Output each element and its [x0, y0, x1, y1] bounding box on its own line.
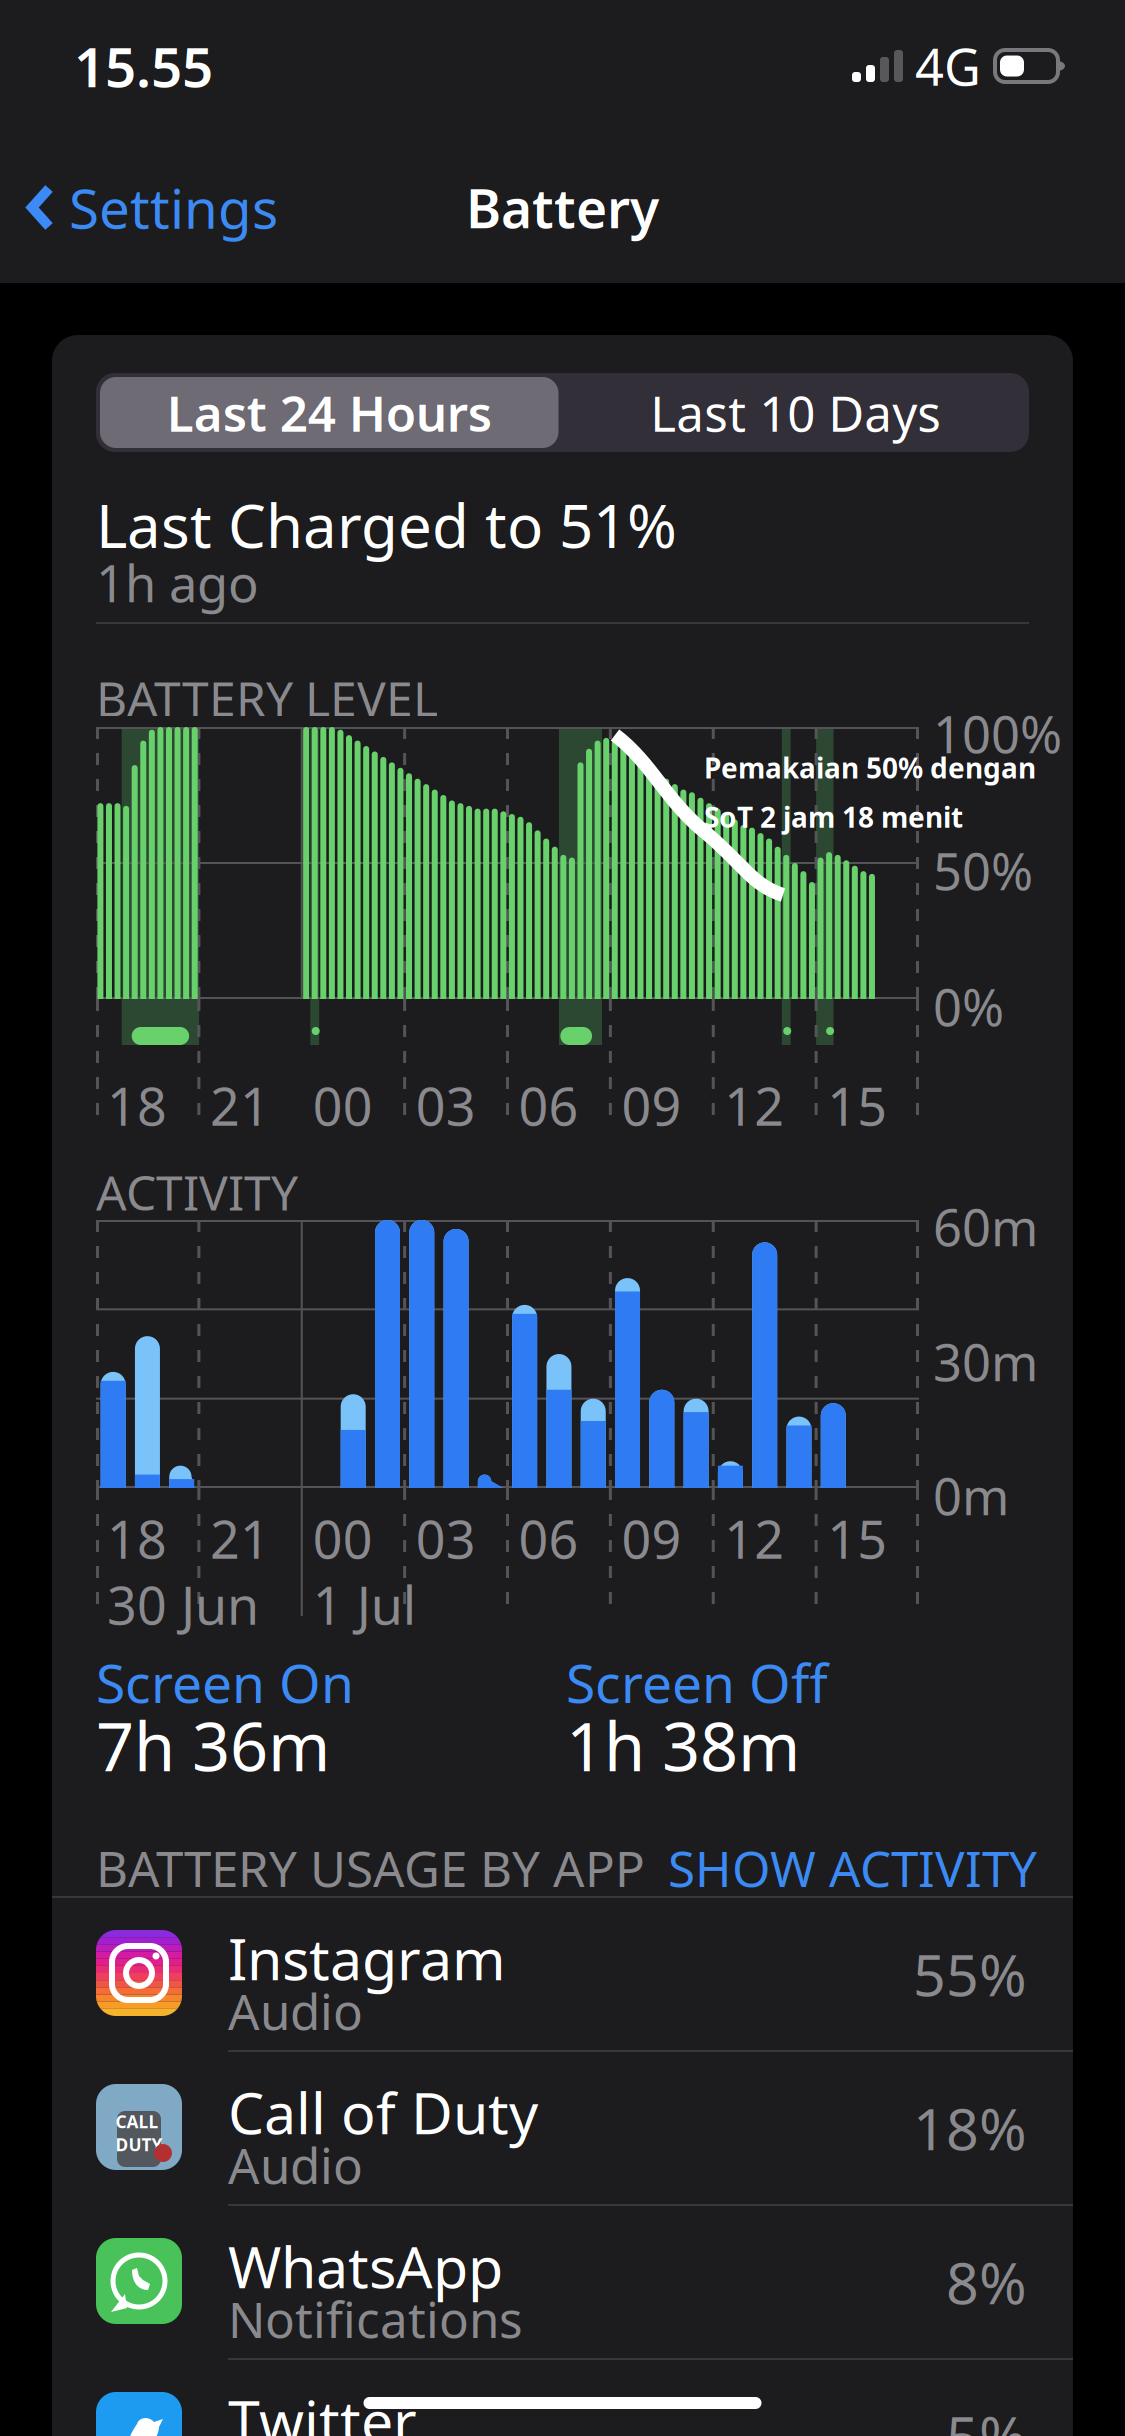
- staticText: Settings: [69, 171, 278, 244]
- staticText: BATTERY USAGE BY APP: [96, 1835, 645, 1900]
- staticText: WhatsApp: [228, 2228, 503, 2304]
- staticText: 5%: [946, 2398, 1027, 2436]
- staticText: 4G: [915, 32, 981, 100]
- staticText: 7h 36m: [96, 1701, 330, 1789]
- staticText: 1 Jul: [313, 1570, 416, 1639]
- button[interactable]: WhatsApp: [52, 2206, 1073, 2358]
- button[interactable]: CALL DUTY: [52, 2052, 1073, 2204]
- button[interactable]: SHOW ACTIVITY: [668, 1835, 1037, 1900]
- staticText: 55%: [913, 1936, 1027, 2012]
- staticText: 8%: [946, 2244, 1027, 2320]
- staticText: 03: [416, 1504, 476, 1573]
- staticText: 15.55: [74, 30, 213, 102]
- staticText: 21: [210, 1071, 270, 1140]
- staticText: 00: [313, 1071, 373, 1140]
- staticText: Call of Duty: [228, 2074, 538, 2150]
- staticText: 09: [621, 1504, 681, 1573]
- staticText: 30 Jun: [107, 1570, 259, 1639]
- button[interactable]: Settings: [0, 157, 278, 258]
- staticText: SHOW ACTIVITY: [668, 1835, 1037, 1900]
- staticText: BATTERY LEVEL: [96, 666, 438, 730]
- staticText: 1h ago: [96, 549, 259, 616]
- staticText: CALL DUTY: [115, 2110, 162, 2156]
- staticText: SoT 2 jam 18 menit: [704, 798, 963, 835]
- staticText: 06: [518, 1504, 578, 1573]
- button[interactable]: Twitter: [52, 2360, 1073, 2436]
- button[interactable]: Instagram: [52, 1898, 1073, 2050]
- staticText: 06: [518, 1071, 578, 1140]
- staticText: Screen Off: [566, 1647, 828, 1718]
- staticText: Audio: [228, 2132, 363, 2197]
- staticText: Twitter: [228, 2382, 417, 2436]
- staticText: 12: [724, 1504, 784, 1573]
- button[interactable]: Last 24 Hours: [96, 373, 562, 452]
- staticText: Instagram: [228, 1920, 506, 1996]
- staticText: 12: [724, 1071, 784, 1140]
- staticText: 30m: [933, 1328, 1038, 1395]
- staticText: 100%: [933, 700, 1062, 767]
- staticText: Last 24 Hours: [167, 380, 492, 445]
- staticText: 1h 38m: [566, 1701, 800, 1789]
- staticText: 50%: [933, 837, 1033, 904]
- staticText: 60m: [933, 1193, 1038, 1260]
- staticText: Last 10 Days: [650, 380, 941, 445]
- staticText: 00: [313, 1504, 373, 1573]
- staticText: 0m: [933, 1462, 1009, 1529]
- staticText: 0%: [933, 973, 1004, 1040]
- staticText: Last Charged to 51%: [96, 485, 677, 565]
- staticText: 15: [827, 1071, 887, 1140]
- staticText: 03: [416, 1071, 476, 1140]
- staticText: 18%: [913, 2090, 1027, 2166]
- staticText: 15: [827, 1504, 887, 1573]
- staticText: ACTIVITY: [96, 1160, 298, 1224]
- button[interactable]: Last 10 Days: [562, 373, 1029, 452]
- staticText: 18: [107, 1071, 167, 1140]
- staticText: Audio: [228, 1978, 363, 2043]
- staticText: 21: [210, 1504, 270, 1573]
- staticText: 09: [621, 1071, 681, 1140]
- staticText: Screen On: [96, 1647, 354, 1718]
- staticText: Notifications: [228, 2286, 523, 2351]
- staticText: 18: [107, 1504, 167, 1573]
- staticText: Pemakaian 50% dengan: [704, 749, 1036, 786]
- staticText: Battery: [466, 172, 659, 243]
